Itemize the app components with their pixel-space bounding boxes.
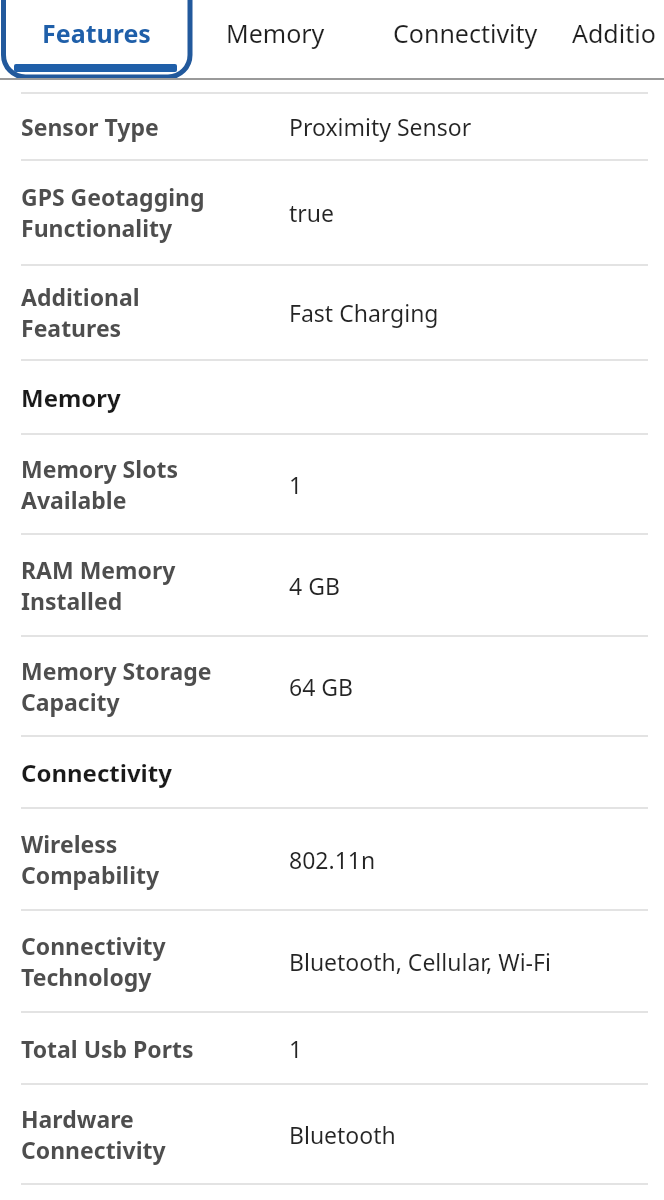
button[interactable]: GPS Geotagging Functionality <box>0 161 664 264</box>
staticText: Hardware Connectivity <box>21 1103 166 1166</box>
staticText: RAM Memory Installed <box>21 554 176 617</box>
button[interactable]: Features <box>0 0 193 62</box>
staticText: Connectivity <box>393 16 538 50</box>
staticText: 802.11n <box>289 844 376 875</box>
button[interactable]: Total Usb Ports <box>0 1013 664 1083</box>
staticText: Fast Charging <box>289 297 439 328</box>
staticText: Features <box>42 16 151 50</box>
button[interactable]: Connectivity Technology <box>0 911 664 1011</box>
button[interactable]: Memory Storage Capacity <box>0 637 664 735</box>
staticText: Memory Storage Capacity <box>21 655 212 718</box>
staticText: Total Usb Ports <box>21 1033 194 1064</box>
staticText: Proximity Sensor <box>289 111 472 142</box>
staticText: 1 <box>289 1033 303 1064</box>
staticText: Connectivity <box>21 756 172 789</box>
staticText: true <box>289 197 334 228</box>
staticText: GPS Geotagging Functionality <box>21 181 205 244</box>
staticText: 4 GB <box>289 570 340 601</box>
staticText: Connectivity Technology <box>21 930 166 993</box>
staticText: Bluetooth, Cellular, Wi-Fi <box>289 946 551 977</box>
button[interactable]: Sensor Type <box>0 94 664 159</box>
staticText: Bluetooth <box>289 1119 396 1150</box>
staticText: Memory <box>226 16 325 50</box>
button[interactable]: Connectivity <box>358 0 572 62</box>
staticText: Wireless Compability <box>21 828 160 891</box>
staticText: 64 GB <box>289 671 353 702</box>
staticText: Sensor Type <box>21 111 159 142</box>
button[interactable]: Additional <box>572 0 664 62</box>
button[interactable]: Connectivity <box>0 737 664 807</box>
button[interactable]: Wireless Compability <box>0 809 664 909</box>
staticText: Additional <box>572 16 664 50</box>
button[interactable]: RAM Memory Installed <box>0 535 664 635</box>
staticText: 1 <box>289 469 303 500</box>
button[interactable]: Additional Features <box>0 266 664 359</box>
button[interactable]: Memory Slots Available <box>0 435 664 533</box>
staticText: Memory Slots Available <box>21 453 179 516</box>
staticText: Memory <box>21 381 121 414</box>
staticText: Additional Features <box>21 281 140 344</box>
button[interactable]: Memory <box>193 0 358 62</box>
button[interactable]: Memory <box>0 361 664 433</box>
button[interactable]: Hardware Connectivity <box>0 1085 664 1183</box>
